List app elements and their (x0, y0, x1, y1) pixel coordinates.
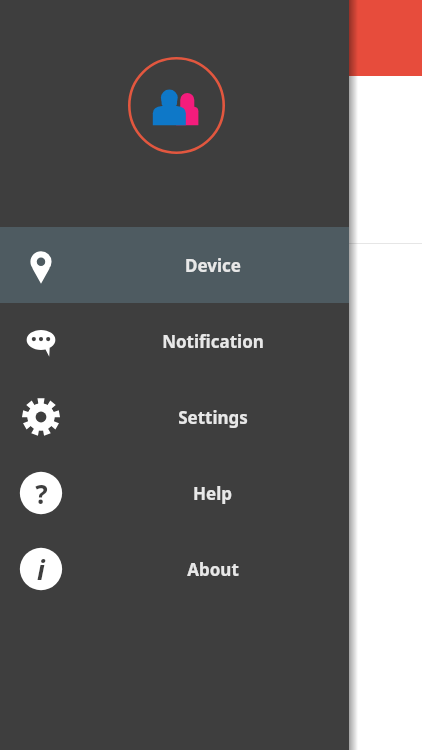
staticText: About (187, 558, 239, 581)
button[interactable]: Device (0, 227, 349, 303)
button[interactable]: ? (0, 455, 349, 531)
button[interactable]: Settings (0, 379, 349, 455)
staticText: ? (35, 476, 48, 511)
staticText: Device (185, 254, 241, 277)
staticText: Help (193, 482, 232, 505)
button[interactable]: Notification (0, 303, 349, 379)
staticText: i (37, 552, 45, 587)
button[interactable]: i (0, 531, 349, 607)
staticText: Notification (162, 330, 264, 353)
staticText: Settings (178, 406, 248, 429)
